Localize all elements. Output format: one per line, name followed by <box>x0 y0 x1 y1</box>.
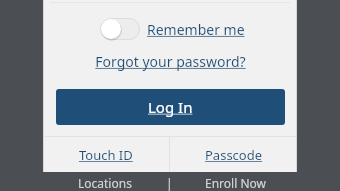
other: Remember me toggle <box>100 18 140 40</box>
staticText: Log In <box>148 97 193 117</box>
button[interactable]: Log In <box>56 89 285 125</box>
button[interactable]: Locations <box>43 172 166 191</box>
button[interactable]: Enroll Now <box>173 172 297 191</box>
staticText: | <box>166 175 173 191</box>
staticText: Remember me <box>147 20 245 39</box>
button[interactable]: Touch ID <box>43 137 169 172</box>
staticText: Locations <box>78 175 132 191</box>
button[interactable]: Passcode <box>170 137 297 172</box>
staticText: Forgot your password? <box>95 52 246 71</box>
staticText: Passcode <box>205 146 263 164</box>
button[interactable]: Forgot your password? <box>43 50 297 72</box>
button[interactable]: Remember me toggle <box>100 16 245 42</box>
staticText: Touch ID <box>79 146 133 164</box>
staticText: Enroll Now <box>205 175 266 191</box>
